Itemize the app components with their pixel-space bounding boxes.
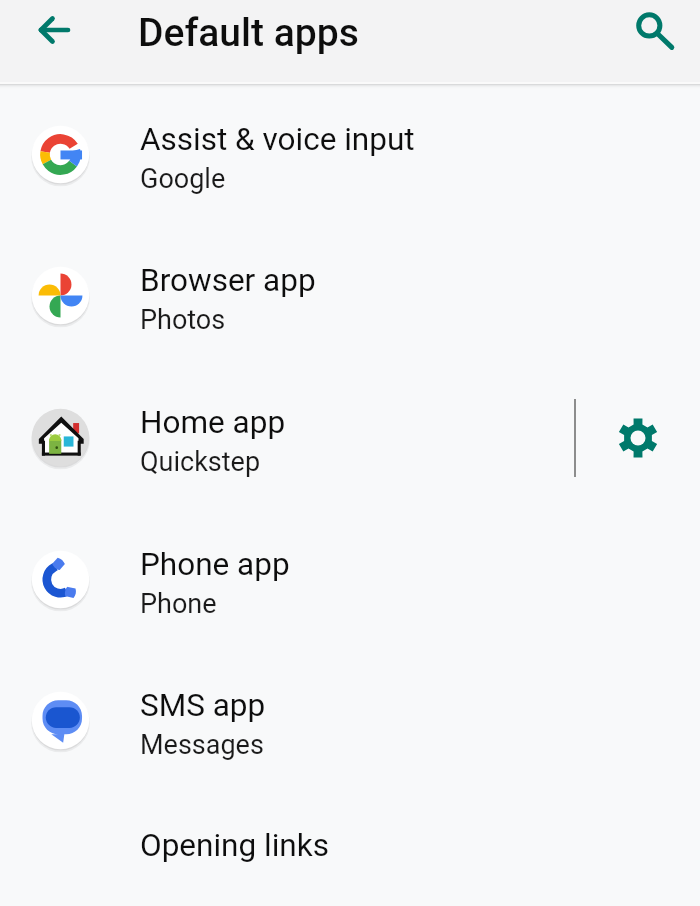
- button[interactable]: Settings: [576, 367, 700, 509]
- button[interactable]: Opening links: [0, 791, 700, 906]
- button[interactable]: Assist & voice input: [0, 84, 700, 226]
- button[interactable]: Browser app: [0, 225, 700, 367]
- staticText: Quickstep: [140, 446, 261, 478]
- button[interactable]: SMS app: [0, 650, 700, 792]
- staticText: Browser app: [140, 262, 316, 299]
- button[interactable]: Search: [608, 0, 692, 73]
- staticText: Phone app: [140, 546, 290, 583]
- button[interactable]: Back: [13, 0, 97, 73]
- staticText: SMS app: [140, 687, 266, 724]
- staticText: Opening links: [140, 827, 329, 864]
- staticText: Default apps: [138, 10, 359, 56]
- staticText: Assist & voice input: [140, 121, 415, 158]
- staticText: Photos: [140, 304, 226, 336]
- staticText: Google: [140, 163, 226, 195]
- staticText: Phone: [140, 588, 217, 620]
- button[interactable]: Home app: [0, 367, 574, 509]
- staticText: Messages: [140, 729, 264, 761]
- button[interactable]: Phone app: [0, 509, 700, 651]
- staticText: Home app: [140, 404, 286, 441]
